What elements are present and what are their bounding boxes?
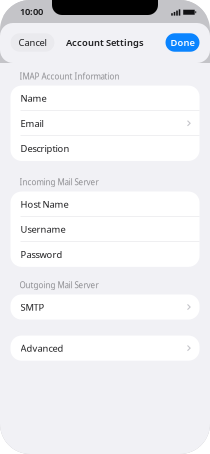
button[interactable]: Cancel xyxy=(10,33,54,52)
staticText: Incoming Mail Server xyxy=(19,177,98,187)
staticText: Advanced xyxy=(20,342,63,354)
staticText: IMAP Account Information xyxy=(19,71,119,82)
button[interactable]: Password xyxy=(10,242,199,267)
staticText: 10:00 xyxy=(20,5,43,17)
button[interactable]: Done xyxy=(165,33,199,52)
staticText: Cancel xyxy=(18,36,46,49)
staticText: Password xyxy=(20,248,62,260)
staticText: Outgoing Mail Server xyxy=(19,280,98,290)
staticText: SMTP xyxy=(20,301,44,313)
staticText: Email xyxy=(20,117,43,129)
staticText: Username xyxy=(20,223,65,235)
button[interactable]: Description xyxy=(10,136,199,161)
staticText: Done xyxy=(170,36,194,49)
button[interactable]: Username xyxy=(10,217,199,242)
staticText: Description xyxy=(20,142,69,155)
button[interactable]: Host Name xyxy=(10,191,199,217)
staticText: Host Name xyxy=(20,198,68,210)
button[interactable]: Advanced xyxy=(10,336,199,361)
button[interactable]: Email xyxy=(10,111,199,136)
button[interactable]: SMTP xyxy=(10,294,199,320)
button[interactable]: Name xyxy=(10,86,199,111)
staticText: Account Settings xyxy=(66,36,144,49)
staticText: Name xyxy=(20,92,46,104)
